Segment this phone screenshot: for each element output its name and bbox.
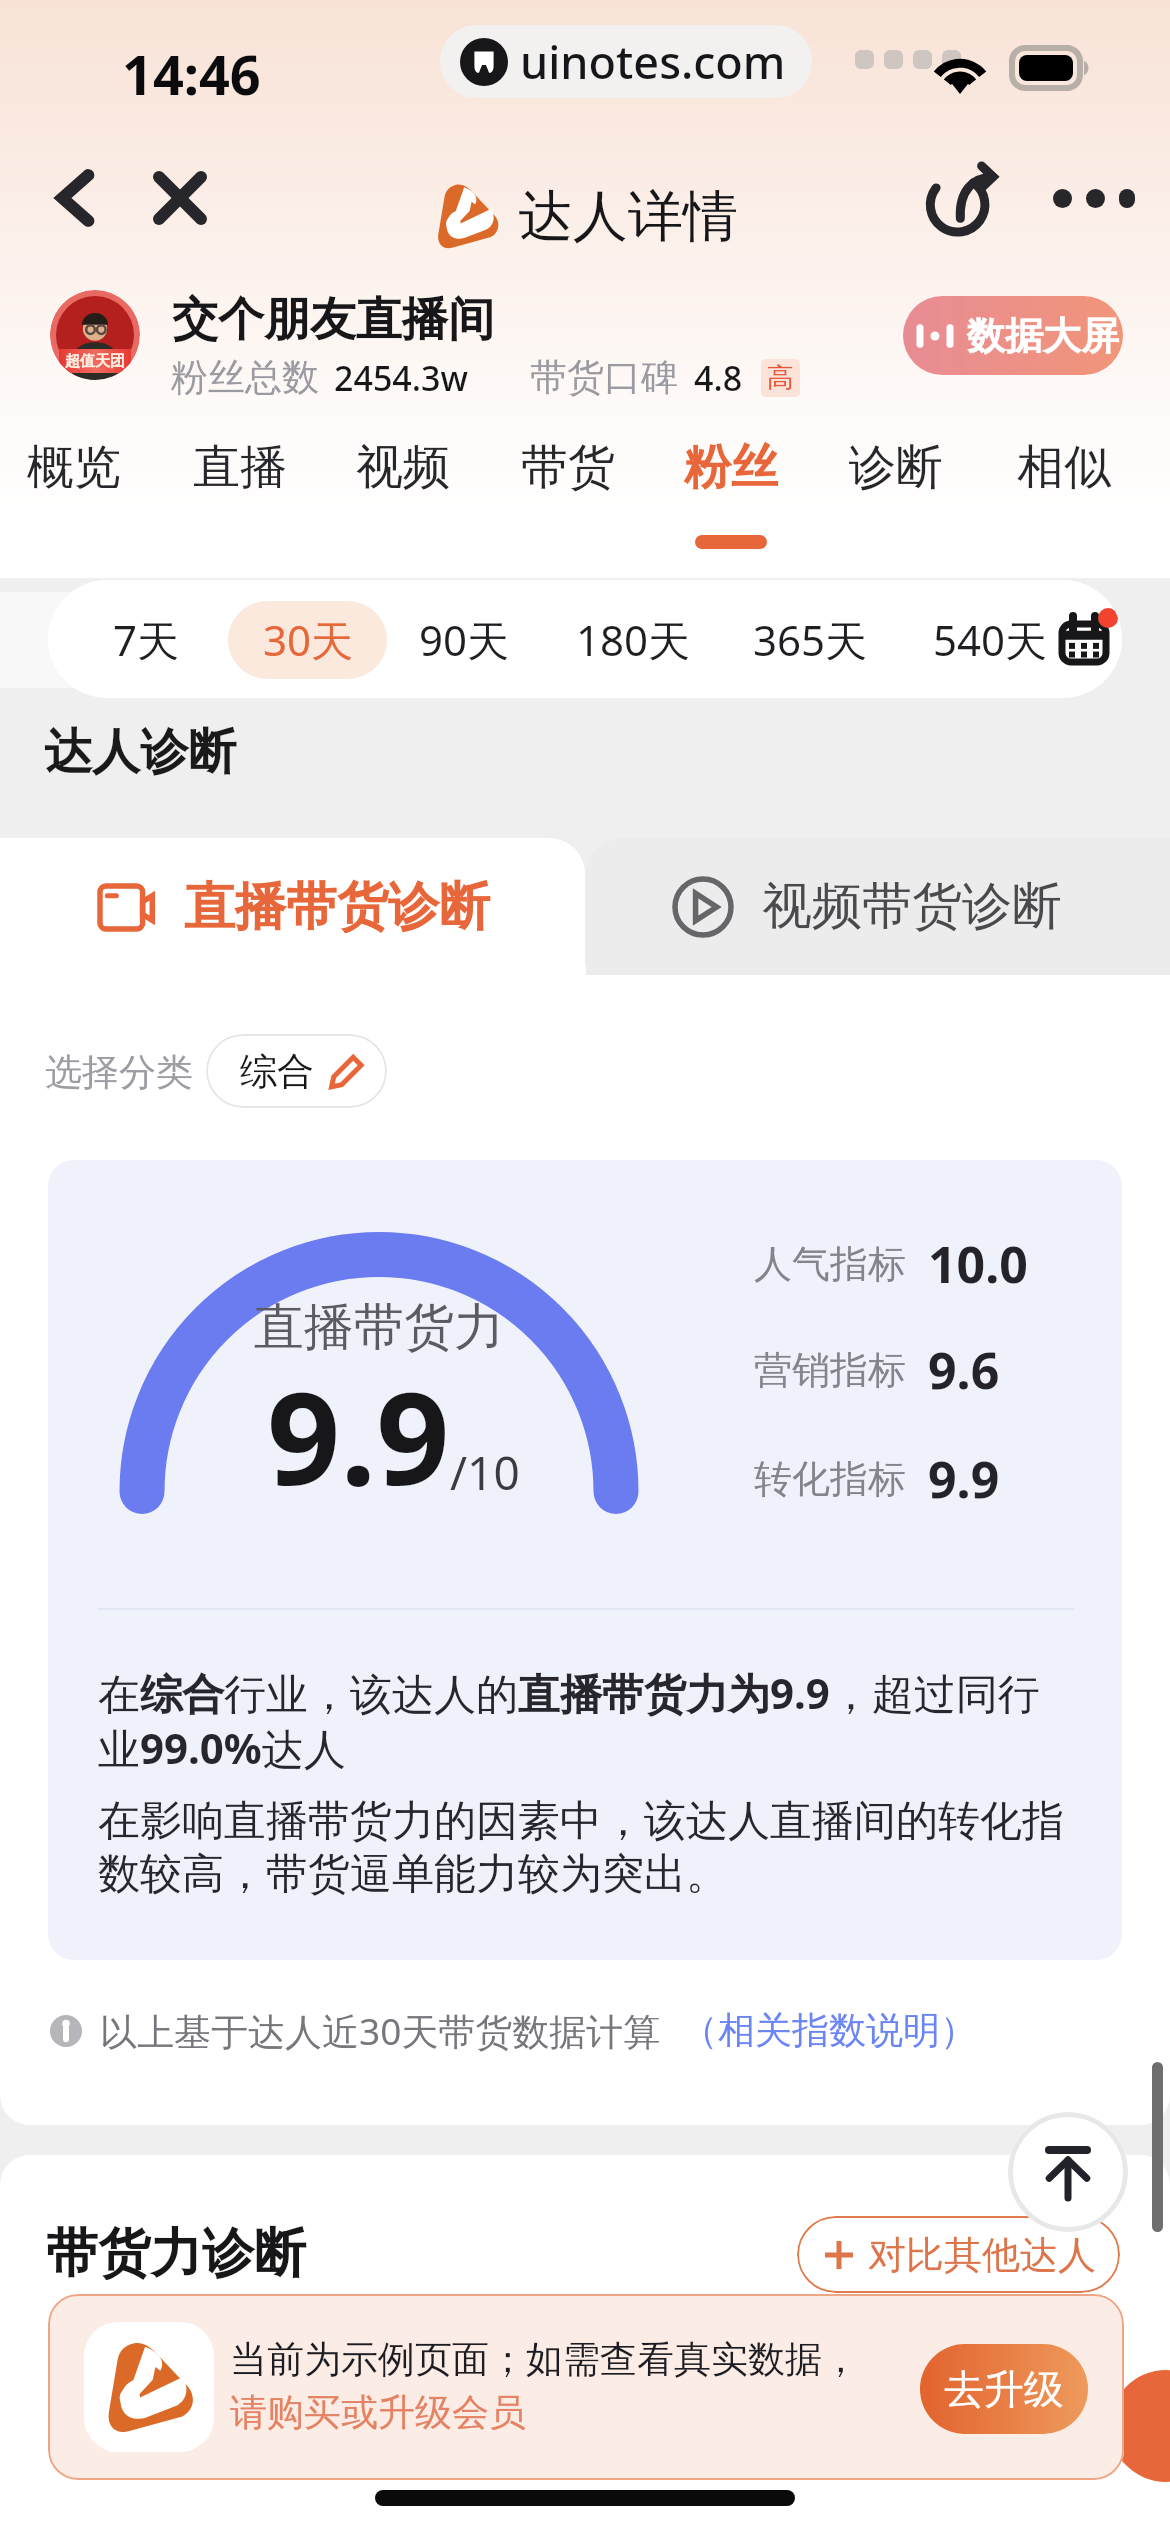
staticText: 9.9 — [267, 1348, 450, 1522]
button[interactable]: 视频 — [322, 426, 484, 558]
staticText: 直播 — [193, 438, 287, 497]
staticText: 综合 — [240, 1048, 314, 1095]
staticText: 粉丝总数 — [171, 354, 319, 401]
staticText: uinotes.com — [520, 31, 786, 92]
button[interactable]: 诊断 — [815, 426, 977, 558]
staticText: 直播带货力 — [254, 1296, 504, 1359]
staticText: 达人诊断 — [44, 722, 236, 782]
button[interactable]: 粉丝 — [650, 426, 812, 558]
button[interactable]: 带货 — [487, 426, 649, 558]
staticText: 2454.3w — [334, 355, 468, 401]
staticText: 带货力诊断 — [46, 2221, 306, 2287]
staticText: 相似 — [1017, 438, 1111, 497]
button[interactable]: More options — [1046, 150, 1142, 246]
button[interactable]: 7天 — [101, 592, 191, 686]
staticText: 90天 — [419, 611, 510, 668]
staticText: 转化指标 — [754, 1455, 906, 1503]
staticText: 达人详情 — [518, 182, 738, 251]
button[interactable]: 相似 — [983, 426, 1145, 558]
staticText: 请购买或升级会员 — [230, 2389, 526, 2436]
button[interactable]: 视频带货诊断 — [586, 838, 1170, 975]
staticText: 直播带货诊断 — [184, 875, 490, 939]
staticText: 营销指标 — [754, 1346, 906, 1394]
button[interactable]: 综合 — [206, 1034, 387, 1108]
staticText: 10.0 — [928, 1230, 1028, 1298]
staticText: 高 — [767, 361, 794, 395]
staticText: （相关指数说明） — [681, 2007, 977, 2054]
staticText: 诊断 — [849, 438, 943, 497]
staticText: 7天 — [113, 611, 180, 668]
staticText: 365天 — [753, 611, 868, 668]
staticText: 在影响直播带货力的因素中，该达人直播间的转化指数较高，带货逼单能力较为突出。 — [98, 1795, 1074, 1900]
staticText: 视频带货诊断 — [762, 875, 1062, 938]
staticText: 当前为示例页面；如需查看真实数据， — [230, 2336, 859, 2383]
button[interactable]: 直播带货诊断 — [0, 838, 585, 975]
staticText: 4.8 — [694, 355, 743, 401]
staticText: 人气指标 — [754, 1240, 906, 1288]
staticText: 540天 — [933, 611, 1048, 668]
button[interactable]: 对比其他达人 — [797, 2216, 1120, 2293]
button[interactable]: 180天 — [572, 592, 694, 686]
staticText: 14:46 — [122, 37, 261, 111]
button[interactable]: 直播 — [159, 426, 321, 558]
button[interactable]: （相关指数说明） — [681, 2007, 977, 2054]
staticText: 数据大屏 — [967, 312, 1119, 360]
button[interactable]: 90天 — [403, 592, 525, 686]
staticText: 对比其他达人 — [868, 2231, 1096, 2279]
staticText: 30天 — [263, 611, 354, 668]
button[interactable]: Pick date range — [1046, 602, 1122, 678]
button[interactable]: 概览 — [0, 426, 155, 558]
button[interactable]: 540天 — [929, 592, 1051, 686]
staticText: 9.9 — [928, 1445, 1000, 1513]
staticText: /10 — [450, 1441, 520, 1504]
staticText: 视频 — [356, 438, 450, 497]
staticText: 粉丝 — [684, 438, 778, 497]
button[interactable]: Scroll to top — [1008, 2112, 1128, 2232]
button[interactable]: 数据大屏 — [903, 296, 1123, 375]
button[interactable]: Close — [132, 150, 228, 246]
staticText: 去升级 — [944, 2364, 1064, 2414]
staticText: 带货口碑 — [530, 354, 678, 401]
staticText: 9.6 — [928, 1336, 1000, 1404]
staticText: 180天 — [576, 611, 691, 668]
button[interactable]: 30天 — [247, 592, 369, 686]
staticText: 以上基于达人近30天带货数据计算 — [100, 2005, 661, 2056]
staticText: 带货 — [521, 438, 615, 497]
staticText: 交个朋友直播间 — [172, 291, 494, 349]
staticText: 概览 — [27, 438, 121, 497]
button[interactable]: 去升级 — [920, 2344, 1088, 2434]
button[interactable]: Share — [918, 150, 1014, 246]
button[interactable]: Back — [30, 150, 126, 246]
staticText: 在综合行业，该达人的直播带货力为9.9，超过同行业99.0%达人 — [98, 1664, 1074, 1776]
staticText: 选择分类 — [45, 1049, 193, 1096]
staticText: 超值天团 — [65, 352, 125, 371]
button[interactable]: 365天 — [749, 592, 871, 686]
